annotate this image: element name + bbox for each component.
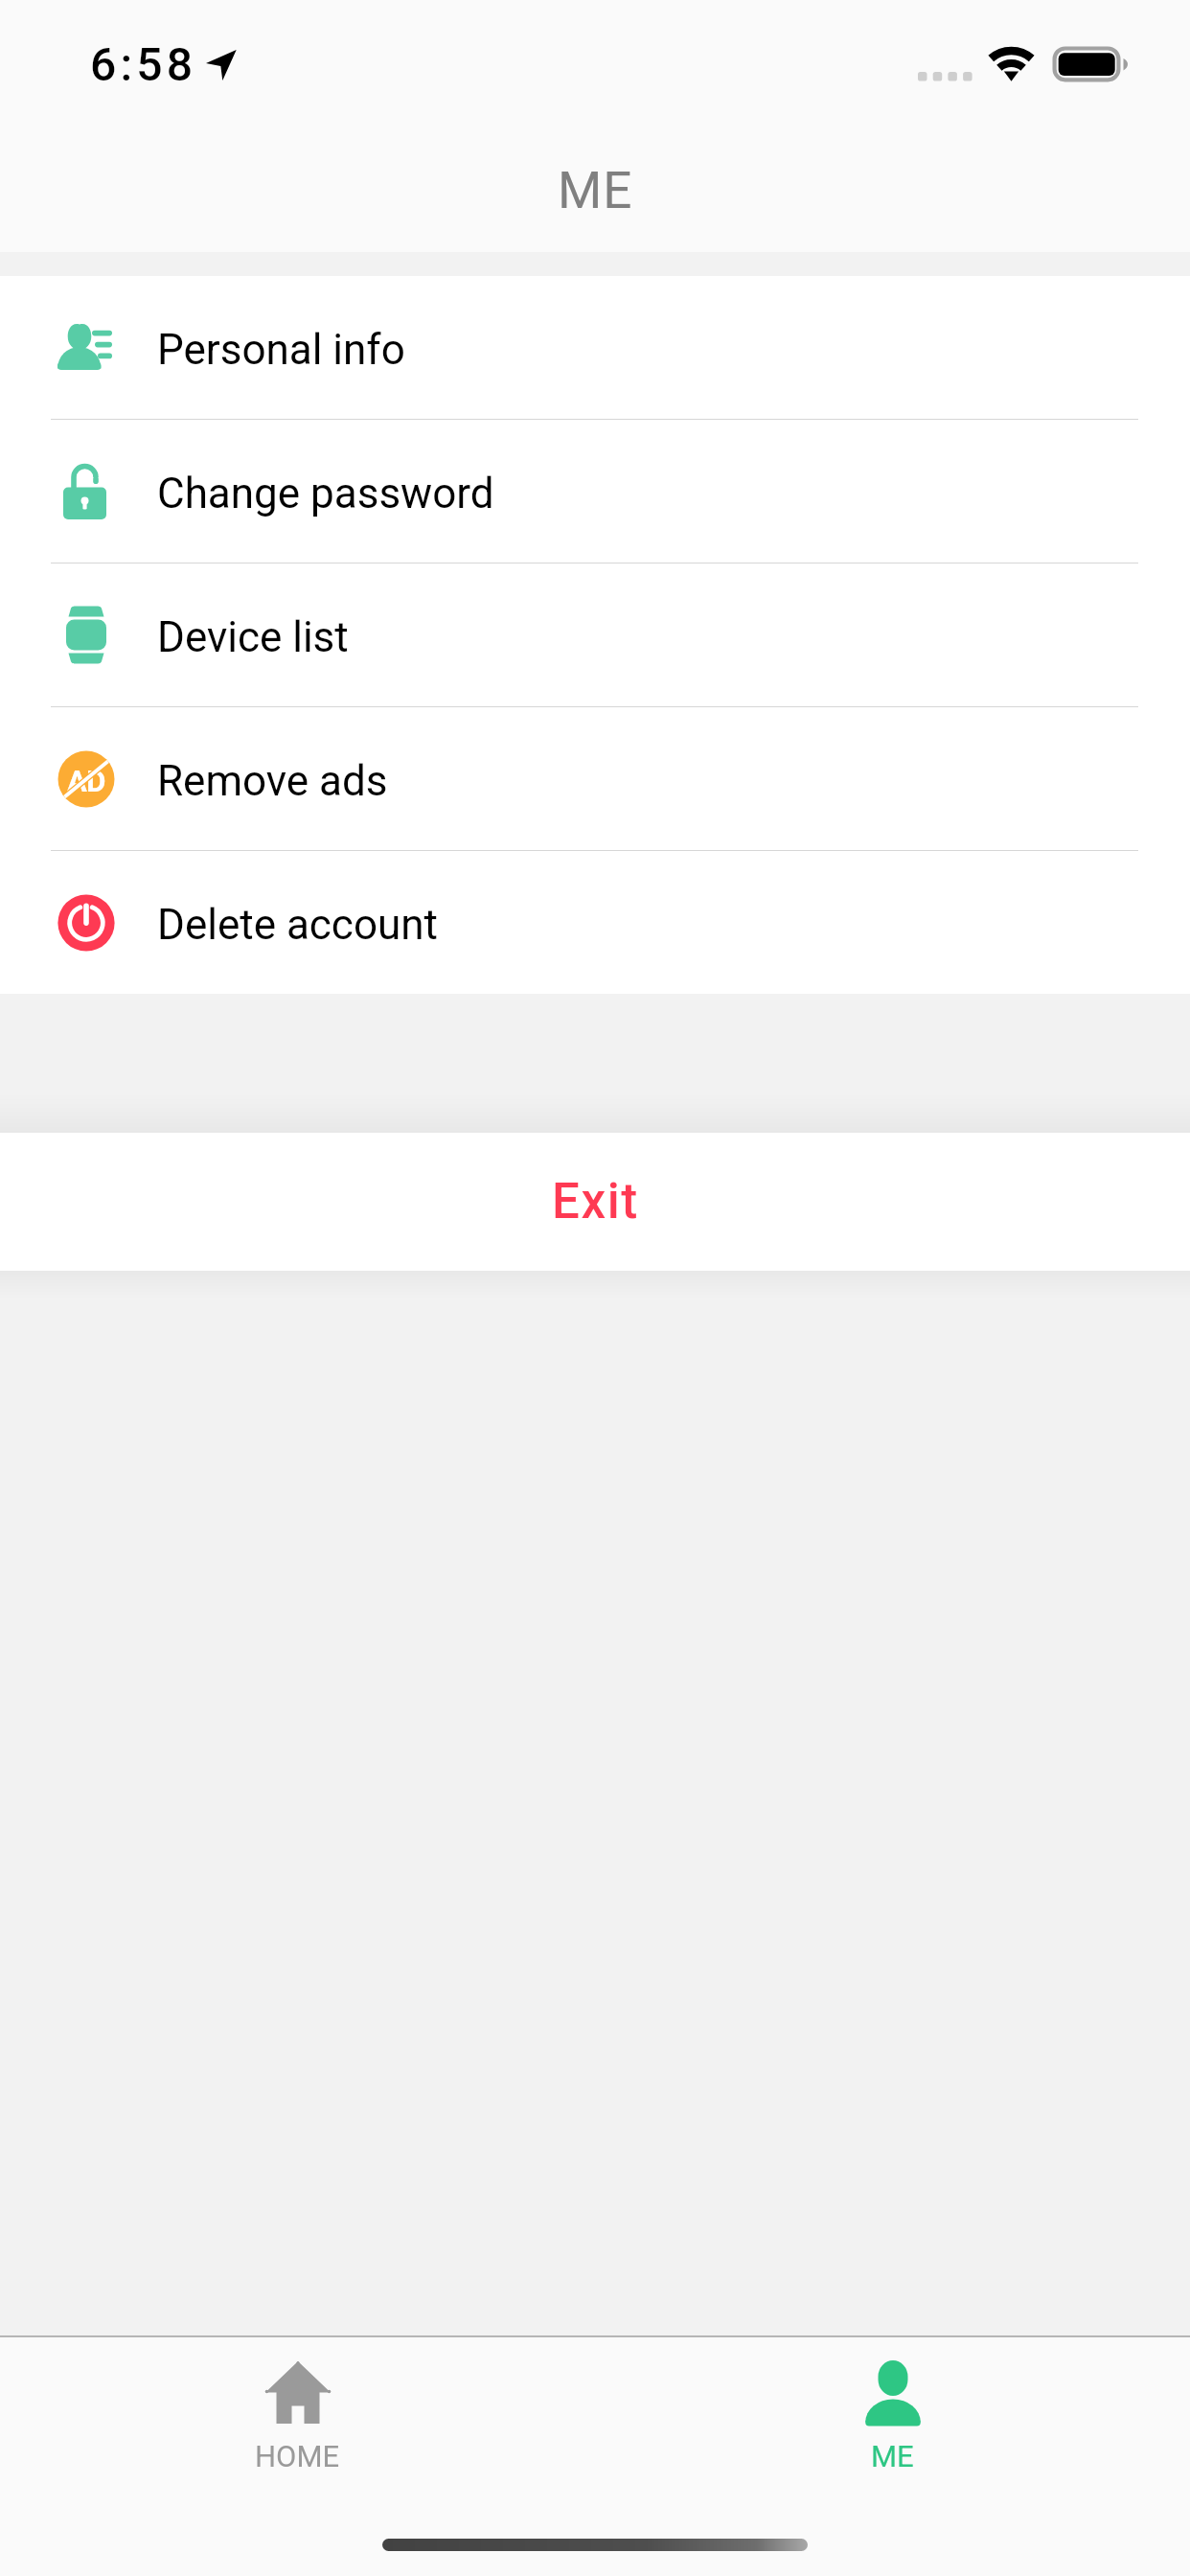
staticText: AD xyxy=(67,764,105,798)
staticText: ME xyxy=(558,161,633,220)
button[interactable]: HOME xyxy=(0,2337,595,2495)
button[interactable]: Exit xyxy=(0,1133,1190,1271)
button[interactable]: Change password xyxy=(0,420,1190,563)
staticText: Personal info xyxy=(157,325,405,375)
button[interactable]: AD xyxy=(0,707,1190,850)
staticText: Remove ads xyxy=(157,756,388,806)
staticText: Device list xyxy=(157,612,349,662)
staticText: Delete account xyxy=(157,900,438,950)
button[interactable]: Device list xyxy=(0,563,1190,706)
button[interactable]: ME xyxy=(595,2337,1190,2495)
staticText: ME xyxy=(871,2439,914,2473)
button[interactable]: Delete account xyxy=(0,851,1190,994)
staticText: HOME xyxy=(255,2439,340,2473)
staticText: 6:58 xyxy=(90,37,197,91)
staticText: Exit xyxy=(552,1173,639,1230)
staticText: Change password xyxy=(157,469,494,518)
button[interactable]: Personal info xyxy=(0,276,1190,419)
